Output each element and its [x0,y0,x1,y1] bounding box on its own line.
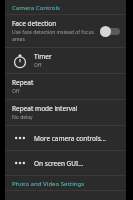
button[interactable]: Repeat [5,74,126,99]
staticText: Face detection [12,19,57,28]
staticText: Timer [34,52,52,61]
staticText: No delay [12,114,33,121]
staticText: Off [34,62,42,69]
button[interactable]: Timer [5,48,126,73]
button[interactable]: Toggle face detection [100,26,120,37]
button[interactable]: Face detection [5,15,126,47]
staticText: Repeat [12,78,34,87]
staticText: More camera controls... [34,134,107,143]
button[interactable]: On screen GUI... [5,151,126,175]
staticText: Repeat mode interval [12,104,78,113]
staticText: On screen GUI... [34,159,84,168]
staticText: Photo and Video Settings [12,180,85,188]
button[interactable]: More camera controls... [5,126,126,150]
staticText: Off [12,88,20,95]
button[interactable]: Repeat mode interval [5,100,126,125]
staticText: Camera Controls [12,4,60,12]
staticText: Use face detection instead of focus area… [12,29,96,43]
